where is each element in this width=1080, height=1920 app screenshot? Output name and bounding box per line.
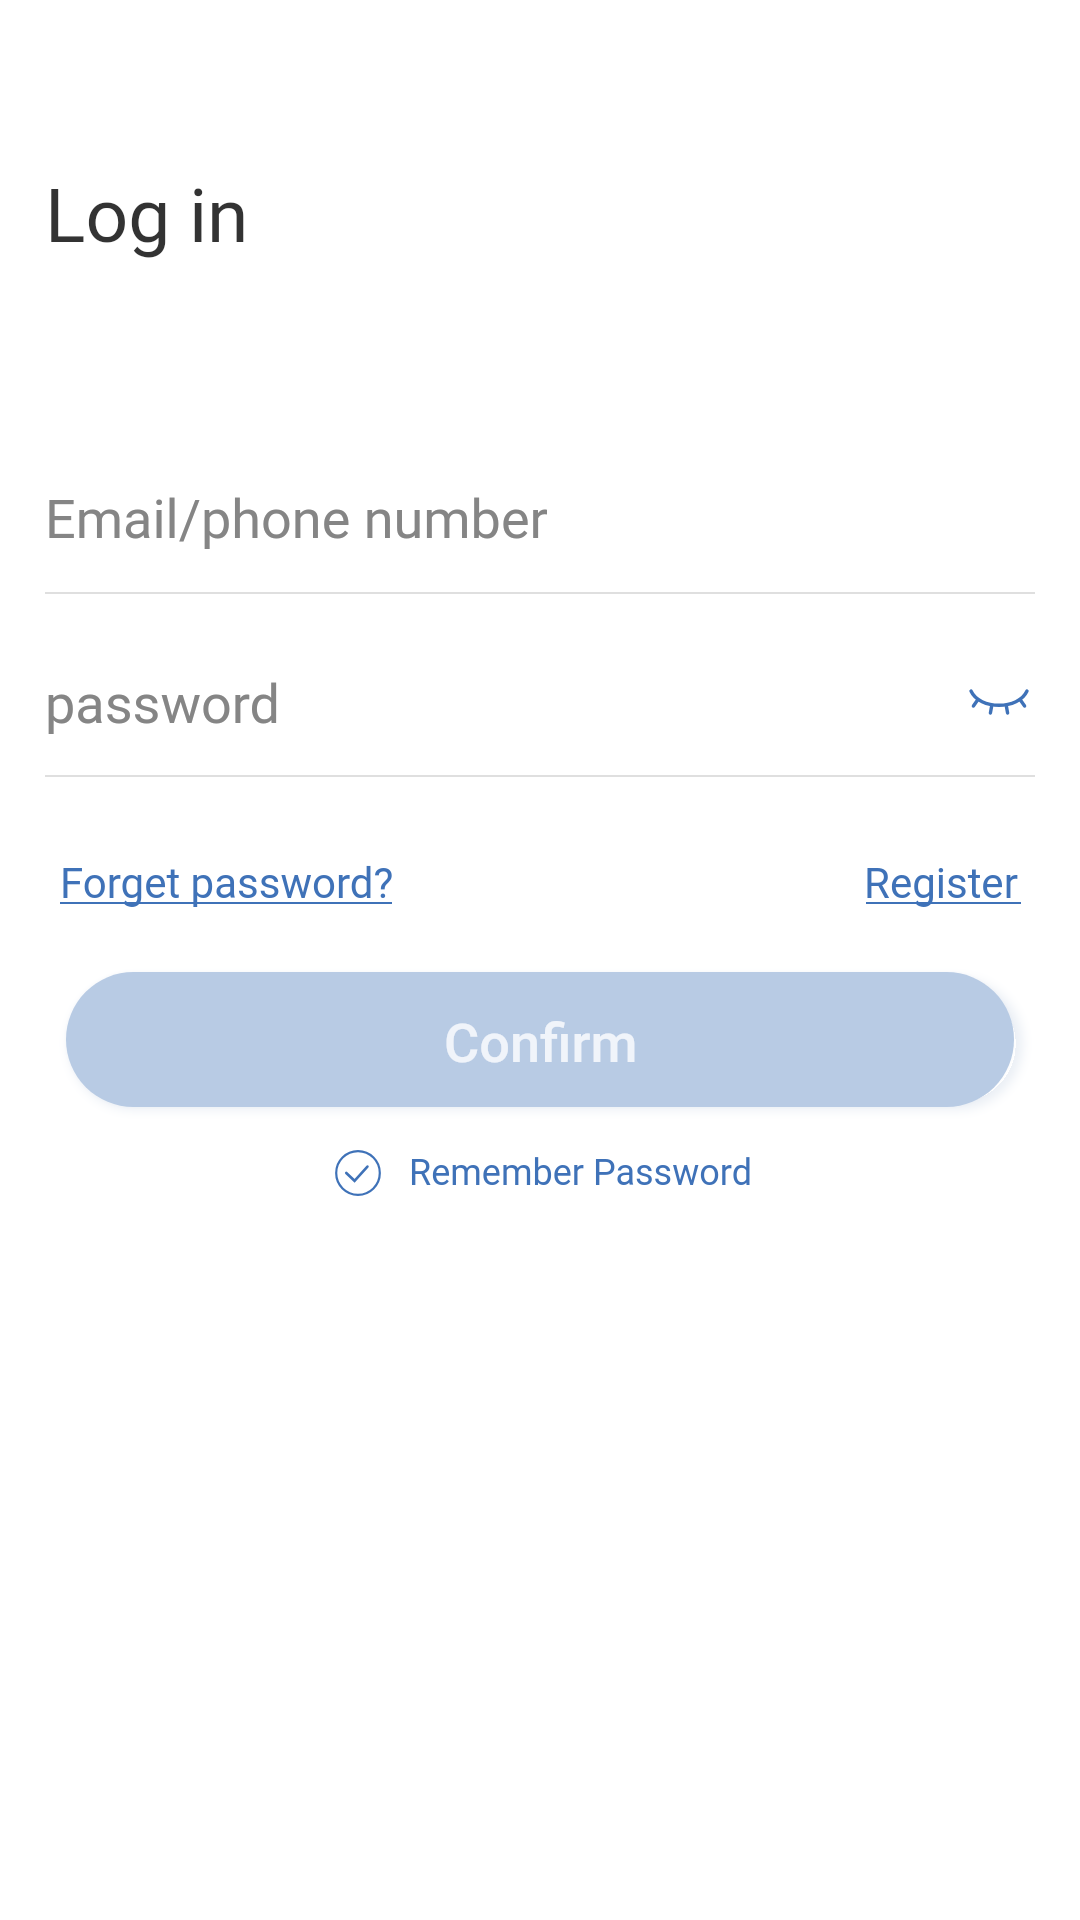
staticText: Confirm (444, 1012, 638, 1075)
button[interactable]: Forget password? (60, 848, 400, 908)
button[interactable]: Email/phone number (0, 455, 1080, 593)
staticText: Register (864, 859, 1018, 908)
staticText: Forget password? (60, 859, 394, 908)
button[interactable]: Confirm (66, 972, 1014, 1107)
button[interactable]: password (0, 640, 880, 776)
button[interactable]: Register (866, 848, 1021, 908)
button[interactable]: Remember Password (3, 1140, 1080, 1206)
staticText: password (45, 673, 281, 736)
staticText: Remember Password (409, 1152, 752, 1194)
button[interactable]: Show password (929, 652, 1069, 752)
staticText: Log in (45, 172, 249, 260)
staticText: Email/phone number (45, 488, 548, 551)
